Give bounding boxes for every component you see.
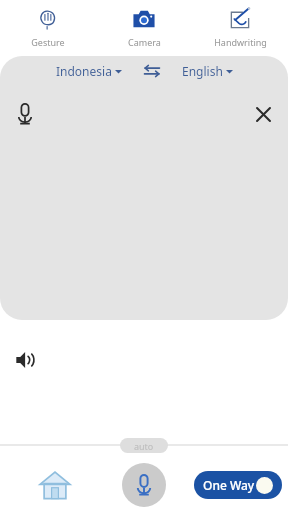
button[interactable]: Gesture (0, 0, 96, 54)
button[interactable]: English (180, 59, 235, 83)
staticText: Indonesia (56, 63, 112, 79)
button[interactable]: auto (120, 438, 168, 453)
staticText: English (182, 63, 223, 79)
button[interactable]: Microphone (122, 463, 166, 507)
staticText: auto (134, 440, 154, 452)
button[interactable]: Speak (10, 344, 42, 376)
button[interactable]: Voice input (9, 98, 41, 130)
button[interactable]: Swap languages (140, 59, 164, 83)
staticText: Gesture (31, 36, 65, 48)
staticText: One Way (203, 477, 255, 493)
staticText: Camera (128, 36, 161, 48)
button[interactable]: Clear (247, 98, 279, 130)
button[interactable]: Handwriting (192, 0, 288, 54)
button[interactable]: Home (33, 463, 77, 507)
button[interactable]: Camera (96, 0, 192, 54)
staticText: Handwriting (214, 36, 267, 48)
button[interactable]: Indonesia (54, 59, 124, 83)
button[interactable]: One Way (194, 471, 282, 499)
